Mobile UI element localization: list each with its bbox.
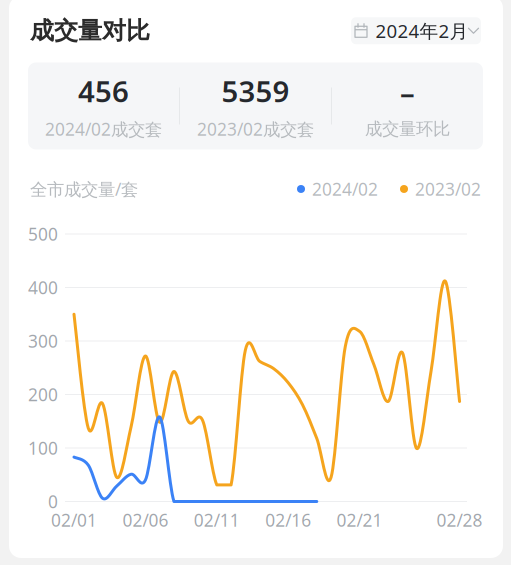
staticText: 2024/02 [312, 177, 378, 200]
staticText: 2024年2月 [375, 18, 468, 43]
staticText: 02/16 [265, 508, 311, 531]
button[interactable]: 2024年2月 [351, 17, 481, 44]
staticText: 成交量环比 [365, 118, 450, 140]
staticText: – [400, 72, 415, 111]
staticText: 02/21 [337, 508, 383, 531]
staticText: 300 [28, 329, 58, 352]
staticText: 全市成交量/套 [30, 177, 138, 200]
staticText: 500 [28, 222, 58, 245]
staticText: 2023/02成交套 [197, 117, 314, 140]
staticText: 2024/02成交套 [45, 117, 162, 140]
staticText: 成交量对比 [30, 16, 150, 45]
staticText: 200 [28, 383, 58, 406]
staticText: 100 [28, 436, 58, 459]
staticText: 2023/02 [415, 177, 481, 200]
staticText: 0 [48, 490, 58, 513]
staticText: 02/28 [437, 508, 483, 531]
staticText: 5359 [221, 71, 289, 110]
staticText: 02/06 [122, 508, 168, 531]
staticText: 456 [78, 71, 129, 110]
staticText: 02/11 [194, 508, 240, 531]
staticText: 02/01 [51, 508, 97, 531]
staticText: 400 [28, 276, 58, 299]
